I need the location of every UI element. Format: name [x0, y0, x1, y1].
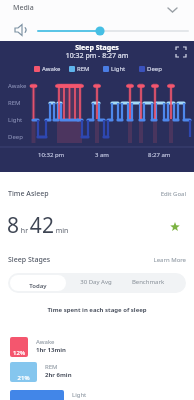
button[interactable]: 12% [0, 337, 194, 358]
staticText: 10:32 pm [38, 151, 65, 159]
staticText: 2hr 6min [45, 371, 72, 379]
staticText: Media [13, 3, 34, 13]
staticText: 1hr 13min [36, 346, 66, 354]
staticText: Awake [42, 65, 61, 73]
button[interactable]: Benchmark [126, 273, 170, 293]
staticText: Time spent in each stage of sleep [0, 306, 194, 314]
button[interactable]: Media [0, 0, 194, 41]
staticText: Today [10, 282, 66, 290]
staticText: REM [8, 99, 21, 107]
staticText: 12% [10, 349, 28, 357]
staticText: Time Asleep [8, 189, 49, 199]
staticText: Edit Goal [138, 190, 186, 198]
staticText: Benchmark [126, 278, 170, 286]
staticText: Awake [8, 82, 27, 90]
staticText: Light [111, 65, 126, 73]
staticText: 3 am [95, 151, 109, 159]
button[interactable]: Today [10, 275, 66, 291]
button[interactable]: Light [0, 390, 194, 400]
staticText: Deep [8, 133, 23, 141]
staticText: Light [8, 116, 23, 124]
staticText: 8:27 am [148, 151, 171, 159]
staticText: 8 hr 42 min [7, 211, 69, 240]
staticText: REM [77, 65, 90, 73]
button[interactable]: Time Asleep [0, 186, 194, 204]
staticText: Awake [36, 338, 55, 346]
staticText: 10:32 pm - 8:27 am [0, 51, 194, 61]
staticText: Sleep Stages [0, 43, 194, 53]
button[interactable]: 21% [0, 362, 194, 383]
staticText: Sleep Stages [8, 255, 51, 265]
staticText: Light [72, 391, 87, 399]
staticText: Learn More [138, 256, 186, 264]
staticText: Deep [147, 65, 162, 73]
button[interactable]: 30 Day Avg [66, 273, 126, 293]
staticText: 21% [10, 374, 37, 382]
staticText: REM [45, 363, 58, 371]
staticText: 30 Day Avg [66, 278, 126, 286]
